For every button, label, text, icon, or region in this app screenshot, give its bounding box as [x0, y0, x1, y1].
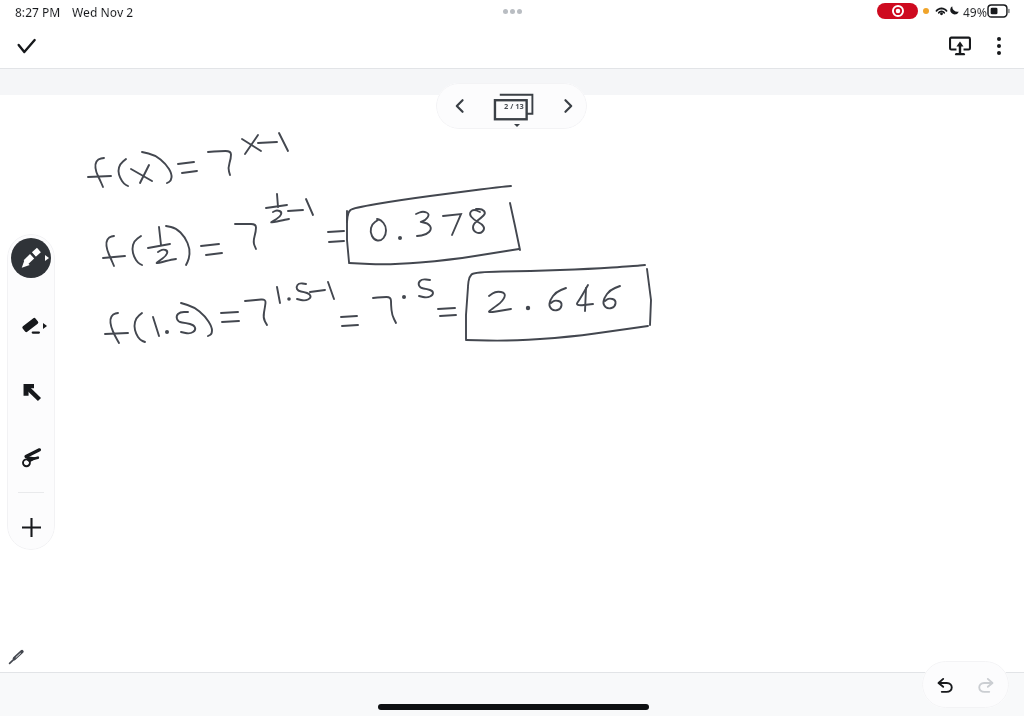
button[interactable]: Pen tool	[11, 238, 51, 278]
button[interactable]: Eraser tool	[12, 307, 50, 345]
button[interactable]: Select tool	[12, 372, 50, 410]
button[interactable]: Page navigator	[436, 83, 587, 129]
button[interactable]: Previous page	[445, 91, 475, 121]
button[interactable]: More options	[978, 25, 1020, 67]
staticText: 8:27 PM	[15, 4, 61, 20]
button[interactable]: Undo	[929, 669, 961, 701]
staticText: Wed Nov 2	[72, 4, 134, 20]
button[interactable]: Add tool	[12, 508, 50, 546]
staticText: 49%	[963, 4, 987, 20]
staticText: 2 / 13	[504, 101, 524, 111]
button[interactable]: Laser pointer	[12, 437, 50, 475]
button[interactable]: Redo	[970, 669, 1002, 701]
button[interactable]: Next page	[553, 91, 583, 121]
button[interactable]: Active pen	[5, 646, 27, 668]
button[interactable]: Recording	[877, 3, 918, 19]
button[interactable]: Done	[5, 25, 47, 67]
button[interactable]: Page 2 of 13	[494, 89, 542, 123]
button[interactable]: Cast screen	[939, 25, 981, 67]
